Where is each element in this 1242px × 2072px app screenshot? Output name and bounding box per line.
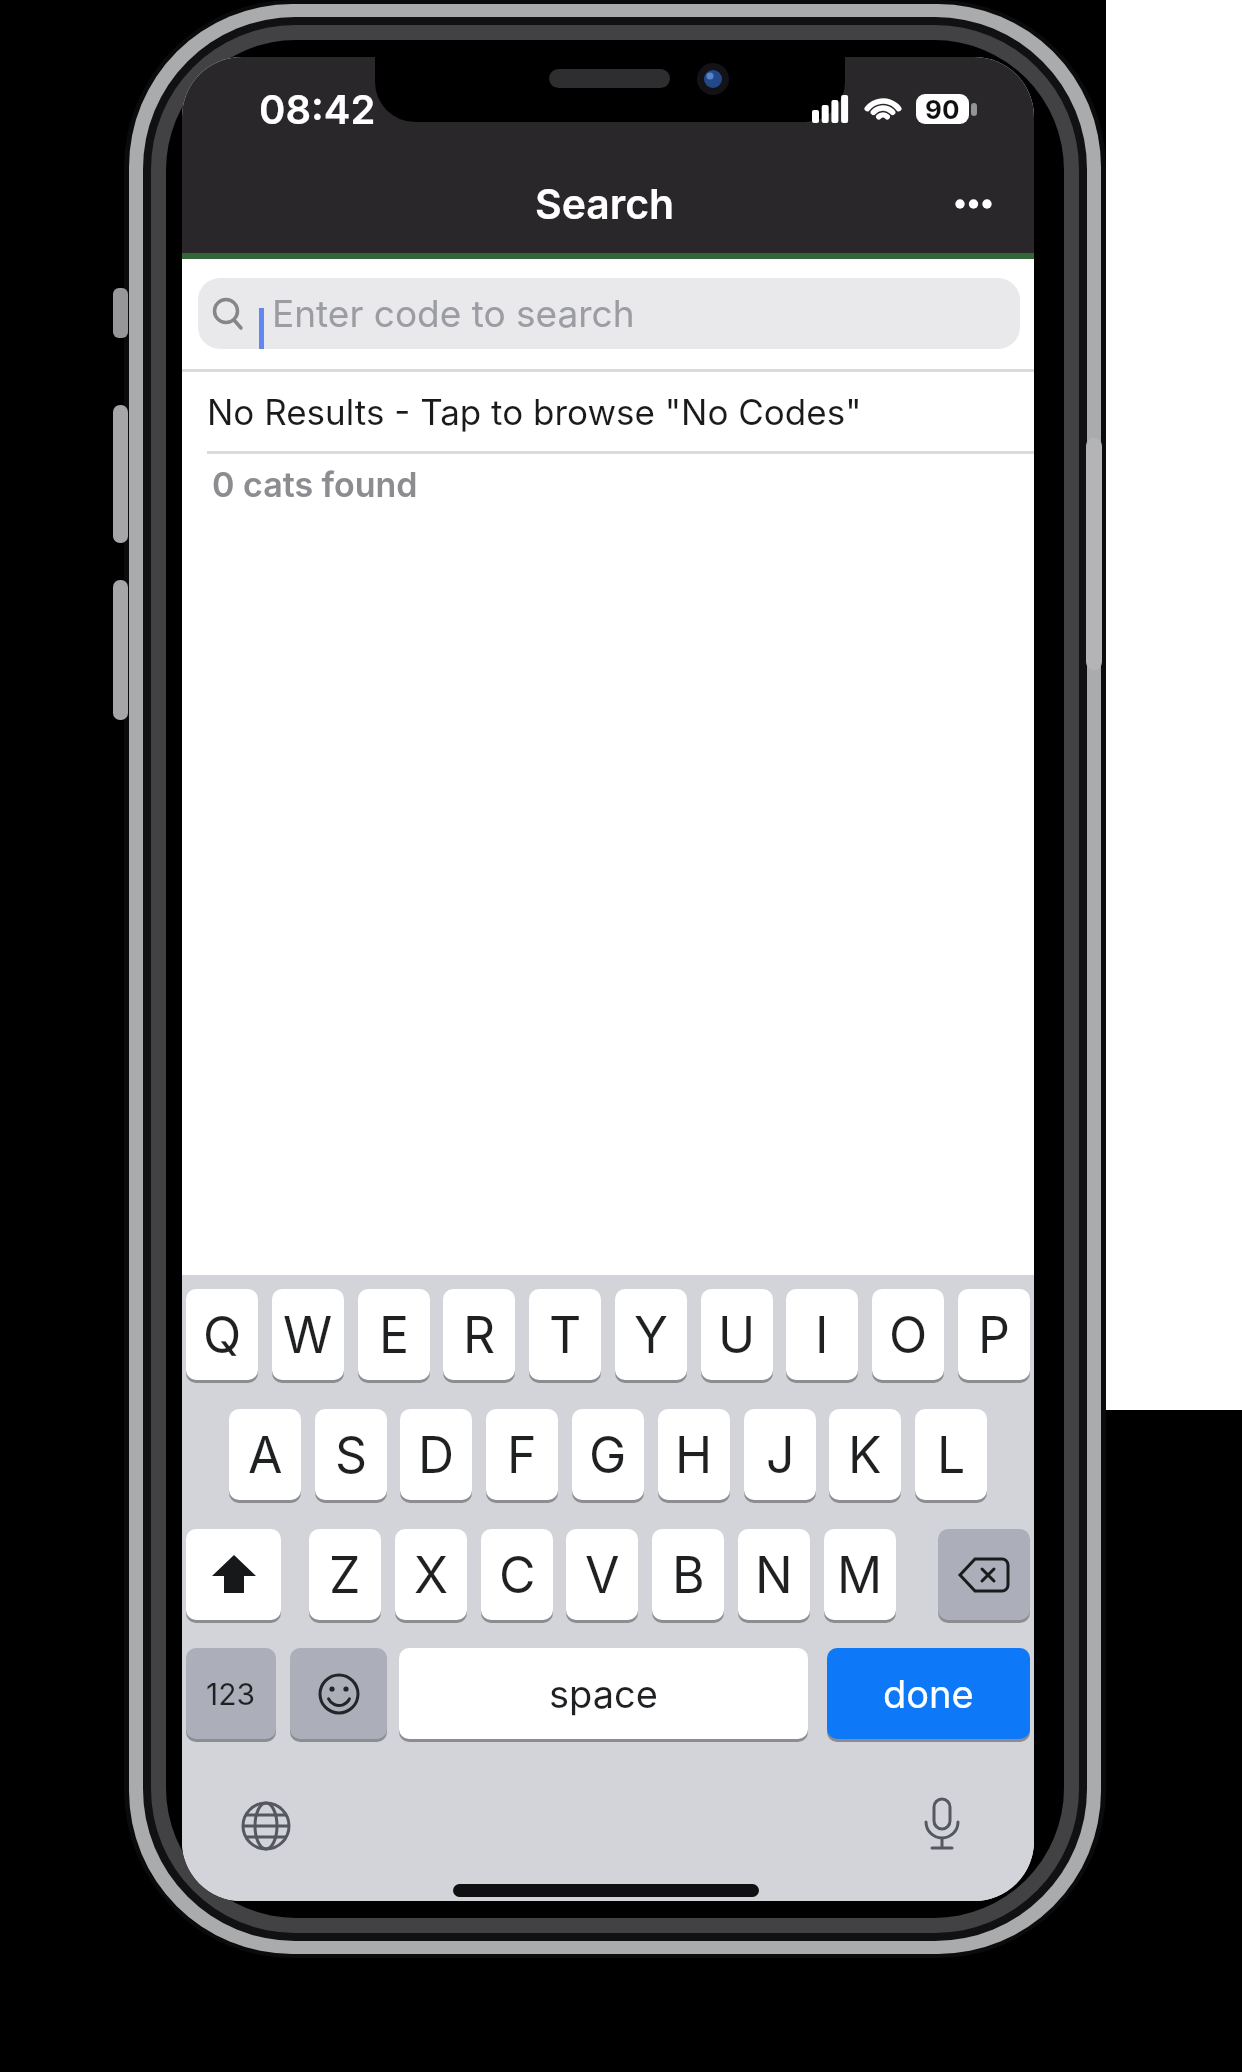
- staticText: space: [549, 1671, 658, 1717]
- button[interactable]: 123: [186, 1648, 276, 1739]
- staticText: K: [848, 1425, 882, 1485]
- staticText: R: [463, 1305, 496, 1365]
- staticText: J: [766, 1425, 795, 1485]
- button[interactable]: [954, 198, 994, 210]
- button[interactable]: [938, 1529, 1030, 1620]
- staticText: Enter code to search: [272, 291, 635, 336]
- button[interactable]: O: [872, 1289, 944, 1380]
- staticText: done: [883, 1671, 974, 1717]
- staticText: 08:42: [259, 85, 376, 133]
- button[interactable]: L: [915, 1409, 987, 1500]
- button[interactable]: U: [701, 1289, 773, 1380]
- staticText: H: [675, 1425, 713, 1485]
- button[interactable]: W: [272, 1289, 344, 1380]
- button[interactable]: B: [652, 1529, 724, 1620]
- button[interactable]: C: [481, 1529, 553, 1620]
- staticText: W: [283, 1305, 333, 1365]
- staticText: M: [837, 1545, 883, 1605]
- button[interactable]: [919, 1797, 965, 1853]
- button[interactable]: Enter code to search: [198, 278, 1020, 349]
- staticText: X: [414, 1545, 449, 1605]
- button[interactable]: R: [443, 1289, 515, 1380]
- button[interactable]: P: [958, 1289, 1030, 1380]
- button[interactable]: T: [529, 1289, 601, 1380]
- button[interactable]: M: [824, 1529, 896, 1620]
- button[interactable]: X: [395, 1529, 467, 1620]
- button[interactable]: space: [399, 1648, 808, 1739]
- button[interactable]: V: [566, 1529, 638, 1620]
- button[interactable]: done: [827, 1648, 1030, 1739]
- button[interactable]: E: [358, 1289, 430, 1380]
- staticText: V: [585, 1545, 620, 1605]
- staticText: L: [937, 1425, 966, 1485]
- staticText: F: [507, 1425, 537, 1485]
- staticText: D: [418, 1425, 455, 1485]
- button[interactable]: Z: [309, 1529, 381, 1620]
- staticText: O: [889, 1305, 928, 1365]
- button[interactable]: A: [229, 1409, 301, 1500]
- button[interactable]: Y: [615, 1289, 687, 1380]
- staticText: Q: [203, 1305, 242, 1365]
- staticText: 90: [925, 94, 960, 124]
- button[interactable]: K: [829, 1409, 901, 1500]
- button[interactable]: [240, 1800, 292, 1852]
- button[interactable]: I: [786, 1289, 858, 1380]
- button[interactable]: S: [315, 1409, 387, 1500]
- staticText: P: [978, 1305, 1010, 1365]
- button[interactable]: H: [658, 1409, 730, 1500]
- staticText: Y: [634, 1305, 668, 1365]
- staticText: 123: [206, 1676, 256, 1712]
- staticText: C: [499, 1545, 536, 1605]
- button[interactable]: G: [572, 1409, 644, 1500]
- staticText: No Results - Tap to browse "No Codes": [207, 391, 862, 433]
- button[interactable]: N: [738, 1529, 810, 1620]
- staticText: T: [549, 1305, 582, 1365]
- staticText: E: [379, 1305, 410, 1365]
- staticText: U: [718, 1305, 756, 1365]
- button[interactable]: D: [400, 1409, 472, 1500]
- staticText: I: [815, 1305, 829, 1365]
- staticText: Z: [329, 1545, 361, 1605]
- staticText: N: [755, 1545, 793, 1605]
- staticText: A: [248, 1425, 283, 1485]
- staticText: B: [672, 1545, 705, 1605]
- staticText: S: [335, 1425, 368, 1485]
- button[interactable]: No Results - Tap to browse "No Codes": [182, 372, 1034, 451]
- button[interactable]: [186, 1529, 281, 1620]
- staticText: G: [589, 1425, 627, 1485]
- button[interactable]: [290, 1648, 387, 1739]
- staticText: 0 cats found: [212, 464, 418, 505]
- staticText: Search: [535, 179, 675, 229]
- button[interactable]: Q: [186, 1289, 258, 1380]
- button[interactable]: J: [744, 1409, 816, 1500]
- button[interactable]: F: [486, 1409, 558, 1500]
